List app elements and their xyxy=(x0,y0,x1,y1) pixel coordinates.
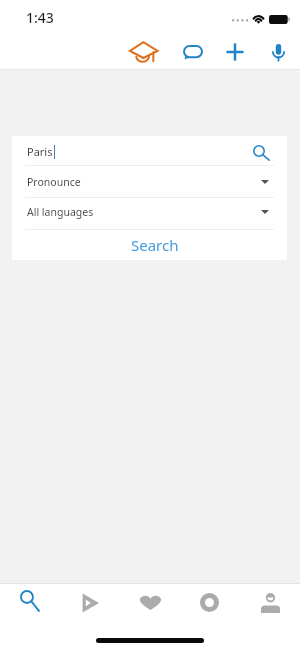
staticText: All languages xyxy=(27,205,94,219)
staticText: Search xyxy=(131,235,179,255)
button[interactable]: All languages xyxy=(12,198,287,229)
button[interactable]: Search xyxy=(12,230,287,260)
button[interactable]: Favourites xyxy=(126,583,174,622)
button[interactable]: Lessons xyxy=(124,33,164,71)
staticText: Paris xyxy=(27,144,53,159)
button[interactable]: Add xyxy=(215,33,255,71)
button[interactable]: Record xyxy=(185,583,233,622)
button[interactable]: Voice search xyxy=(258,33,298,71)
button[interactable]: Paris xyxy=(12,136,287,165)
staticText: 1:43 xyxy=(26,8,54,27)
button[interactable]: Messages xyxy=(173,33,213,71)
staticText: Pronounce xyxy=(27,175,81,189)
button[interactable]: Search xyxy=(6,581,54,620)
button[interactable]: Pronounce xyxy=(12,166,287,197)
button[interactable]: Profile xyxy=(246,583,294,622)
button[interactable]: Videos xyxy=(66,583,114,622)
